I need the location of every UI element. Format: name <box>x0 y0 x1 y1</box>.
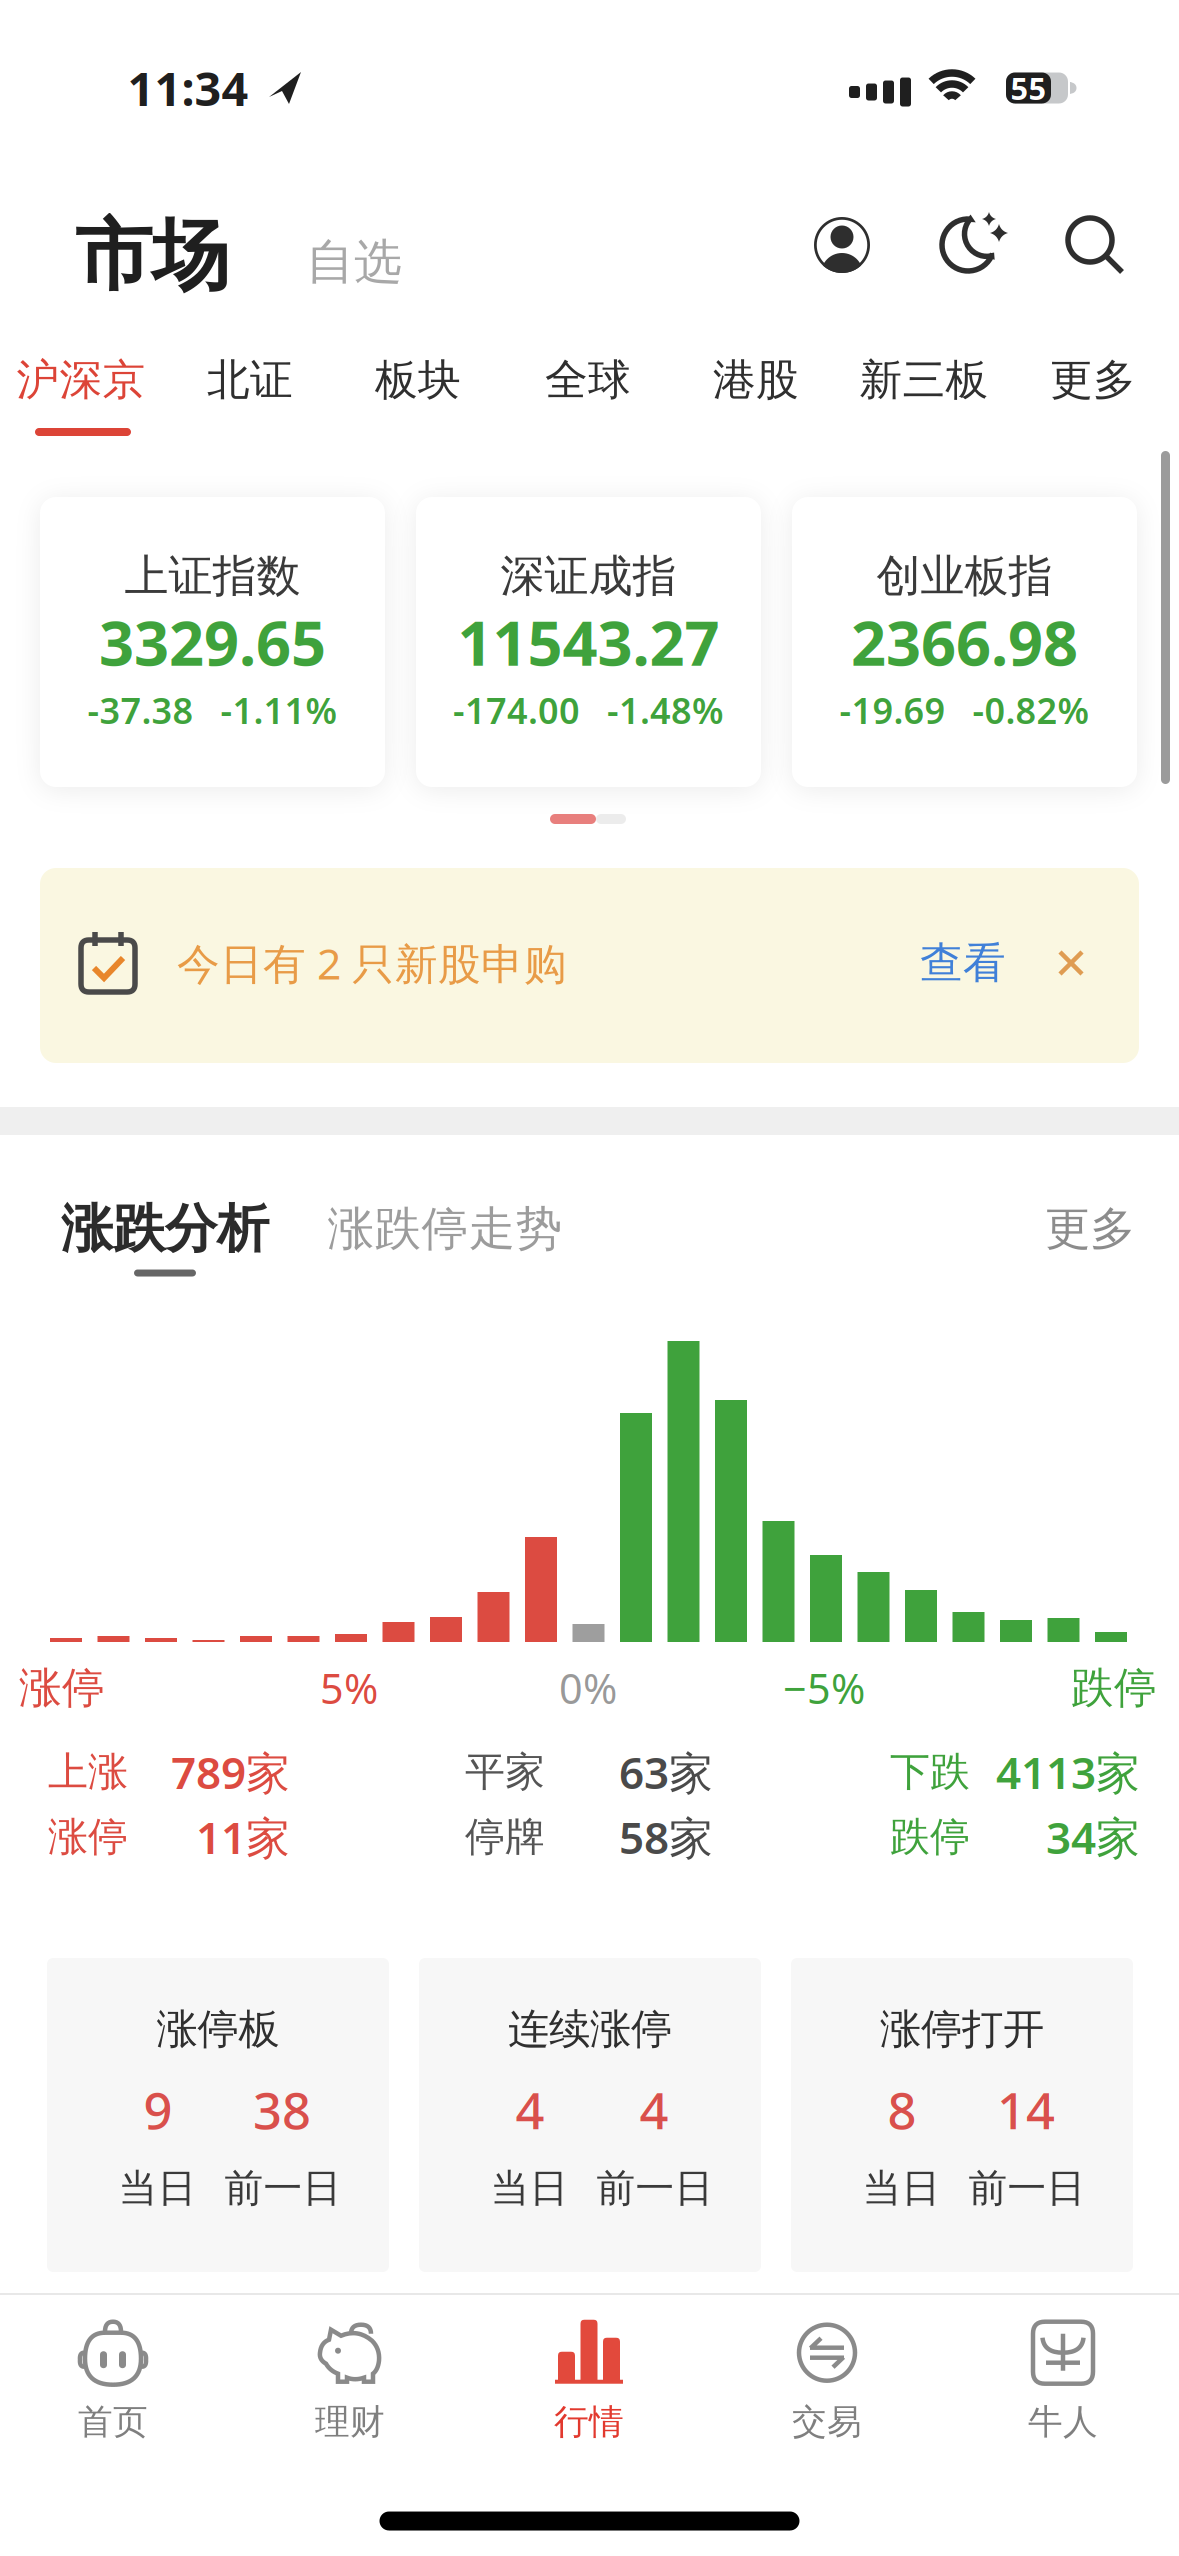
staticText: 更多 <box>1045 1201 1135 1257</box>
staticText: 63家 <box>619 1743 713 1801</box>
button[interactable]: 上证指数 <box>40 497 385 787</box>
staticText: 涨跌分析 <box>61 1197 269 1261</box>
button[interactable]: 牛人 <box>1028 2319 1098 2443</box>
staticText: 11:34 <box>127 57 248 119</box>
button[interactable]: 涨停板 <box>47 1958 389 2272</box>
staticText: 0% <box>559 1661 617 1715</box>
button[interactable]: 全球 <box>545 354 631 406</box>
staticText: 理财 <box>315 2401 385 2443</box>
staticText: 跌停 <box>1071 1662 1157 1714</box>
button[interactable]: 搜索 <box>1064 214 1126 276</box>
staticText: 港股 <box>713 354 799 406</box>
staticText: 下跌 <box>890 1747 970 1796</box>
staticText: −5% <box>783 1661 865 1715</box>
staticText: 789家 <box>171 1743 290 1801</box>
staticText: 停牌 <box>465 1812 545 1861</box>
staticText: 2366.98 <box>851 601 1078 683</box>
staticText: 34家 <box>1046 1808 1140 1866</box>
button[interactable]: 创业板指 <box>792 497 1137 787</box>
button[interactable]: 行情 <box>554 2319 624 2443</box>
staticText: 11543.27 <box>457 601 719 683</box>
staticText: 全球 <box>545 354 631 406</box>
button[interactable]: 更多 <box>1050 354 1136 406</box>
staticText: 当日 <box>490 2165 568 2212</box>
staticText: 涨停 <box>48 1812 128 1861</box>
staticText: 北证 <box>207 354 293 406</box>
button[interactable]: 涨跌停走势 <box>327 1200 562 1258</box>
staticText: 行情 <box>554 2401 624 2443</box>
staticText: 深证成指 <box>500 549 676 603</box>
staticText: 连续涨停 <box>508 2004 672 2055</box>
button[interactable]: 理财 <box>315 2319 385 2443</box>
staticText: 上涨 <box>48 1747 128 1796</box>
button[interactable]: 夜间模式 <box>938 212 1008 278</box>
staticText: 平家 <box>465 1747 545 1796</box>
staticText: 交易 <box>792 2401 862 2443</box>
staticText: 涨停打开 <box>880 2004 1044 2055</box>
staticText: 11家 <box>196 1808 290 1866</box>
staticText: 5% <box>320 1661 378 1715</box>
staticText: 3329.65 <box>99 601 326 683</box>
staticText: 前一日 <box>596 2165 713 2212</box>
staticText: 4113家 <box>996 1743 1140 1801</box>
staticText: 沪深京 <box>16 354 145 406</box>
staticText: 4 <box>639 2076 668 2143</box>
button[interactable]: 更多 <box>1045 1201 1135 1257</box>
button[interactable]: 查看 <box>920 937 1006 989</box>
staticText: 今日有 2 只新股申购 <box>177 935 567 991</box>
staticText: 市场 <box>75 208 229 303</box>
staticText: 首页 <box>78 2401 148 2443</box>
staticText: 55 <box>1010 68 1046 108</box>
staticText: 38 <box>253 2076 311 2143</box>
button[interactable]: 首页 <box>78 2319 148 2443</box>
staticText: 前一日 <box>968 2165 1085 2212</box>
button[interactable]: 涨停打开 <box>791 1958 1133 2272</box>
button[interactable]: 连续涨停 <box>419 1958 761 2272</box>
staticText: 新三板 <box>859 354 988 406</box>
staticText: 14 <box>997 2076 1055 2143</box>
staticText: 板块 <box>375 354 461 406</box>
staticText: 自选 <box>306 232 402 291</box>
staticText: -37.38 -1.11% <box>87 686 337 734</box>
button[interactable]: 交易 <box>792 2319 862 2443</box>
staticText: 前一日 <box>224 2165 341 2212</box>
staticText: -174.00 -1.48% <box>453 686 724 734</box>
button[interactable]: 关闭 <box>1056 948 1086 978</box>
staticText: -19.69 -0.82% <box>839 686 1089 734</box>
staticText: 9 <box>143 2076 172 2143</box>
staticText: 58家 <box>619 1808 713 1866</box>
staticText: 8 <box>887 2076 916 2143</box>
staticText: 跌停 <box>890 1812 970 1861</box>
staticText: 当日 <box>118 2165 196 2212</box>
staticText: 更多 <box>1050 354 1136 406</box>
staticText: 牛人 <box>1028 2401 1098 2443</box>
staticText: 上证指数 <box>124 549 300 603</box>
button[interactable]: 板块 <box>375 354 461 406</box>
button[interactable]: 自选 <box>306 232 402 291</box>
staticText: 当日 <box>862 2165 940 2212</box>
staticText: 创业板指 <box>876 549 1052 603</box>
button[interactable]: 港股 <box>713 354 799 406</box>
staticText: 查看 <box>920 937 1006 989</box>
staticText: 4 <box>515 2076 544 2143</box>
button[interactable]: 账户 <box>814 217 870 273</box>
button[interactable]: 北证 <box>207 354 293 406</box>
button[interactable]: 深证成指 <box>416 497 761 787</box>
button[interactable]: 沪深京 <box>16 354 145 406</box>
staticText: 涨停 <box>19 1662 105 1714</box>
staticText: 涨跌停走势 <box>327 1200 562 1258</box>
button[interactable]: 新三板 <box>859 354 988 406</box>
staticText: 涨停板 <box>156 2004 279 2055</box>
